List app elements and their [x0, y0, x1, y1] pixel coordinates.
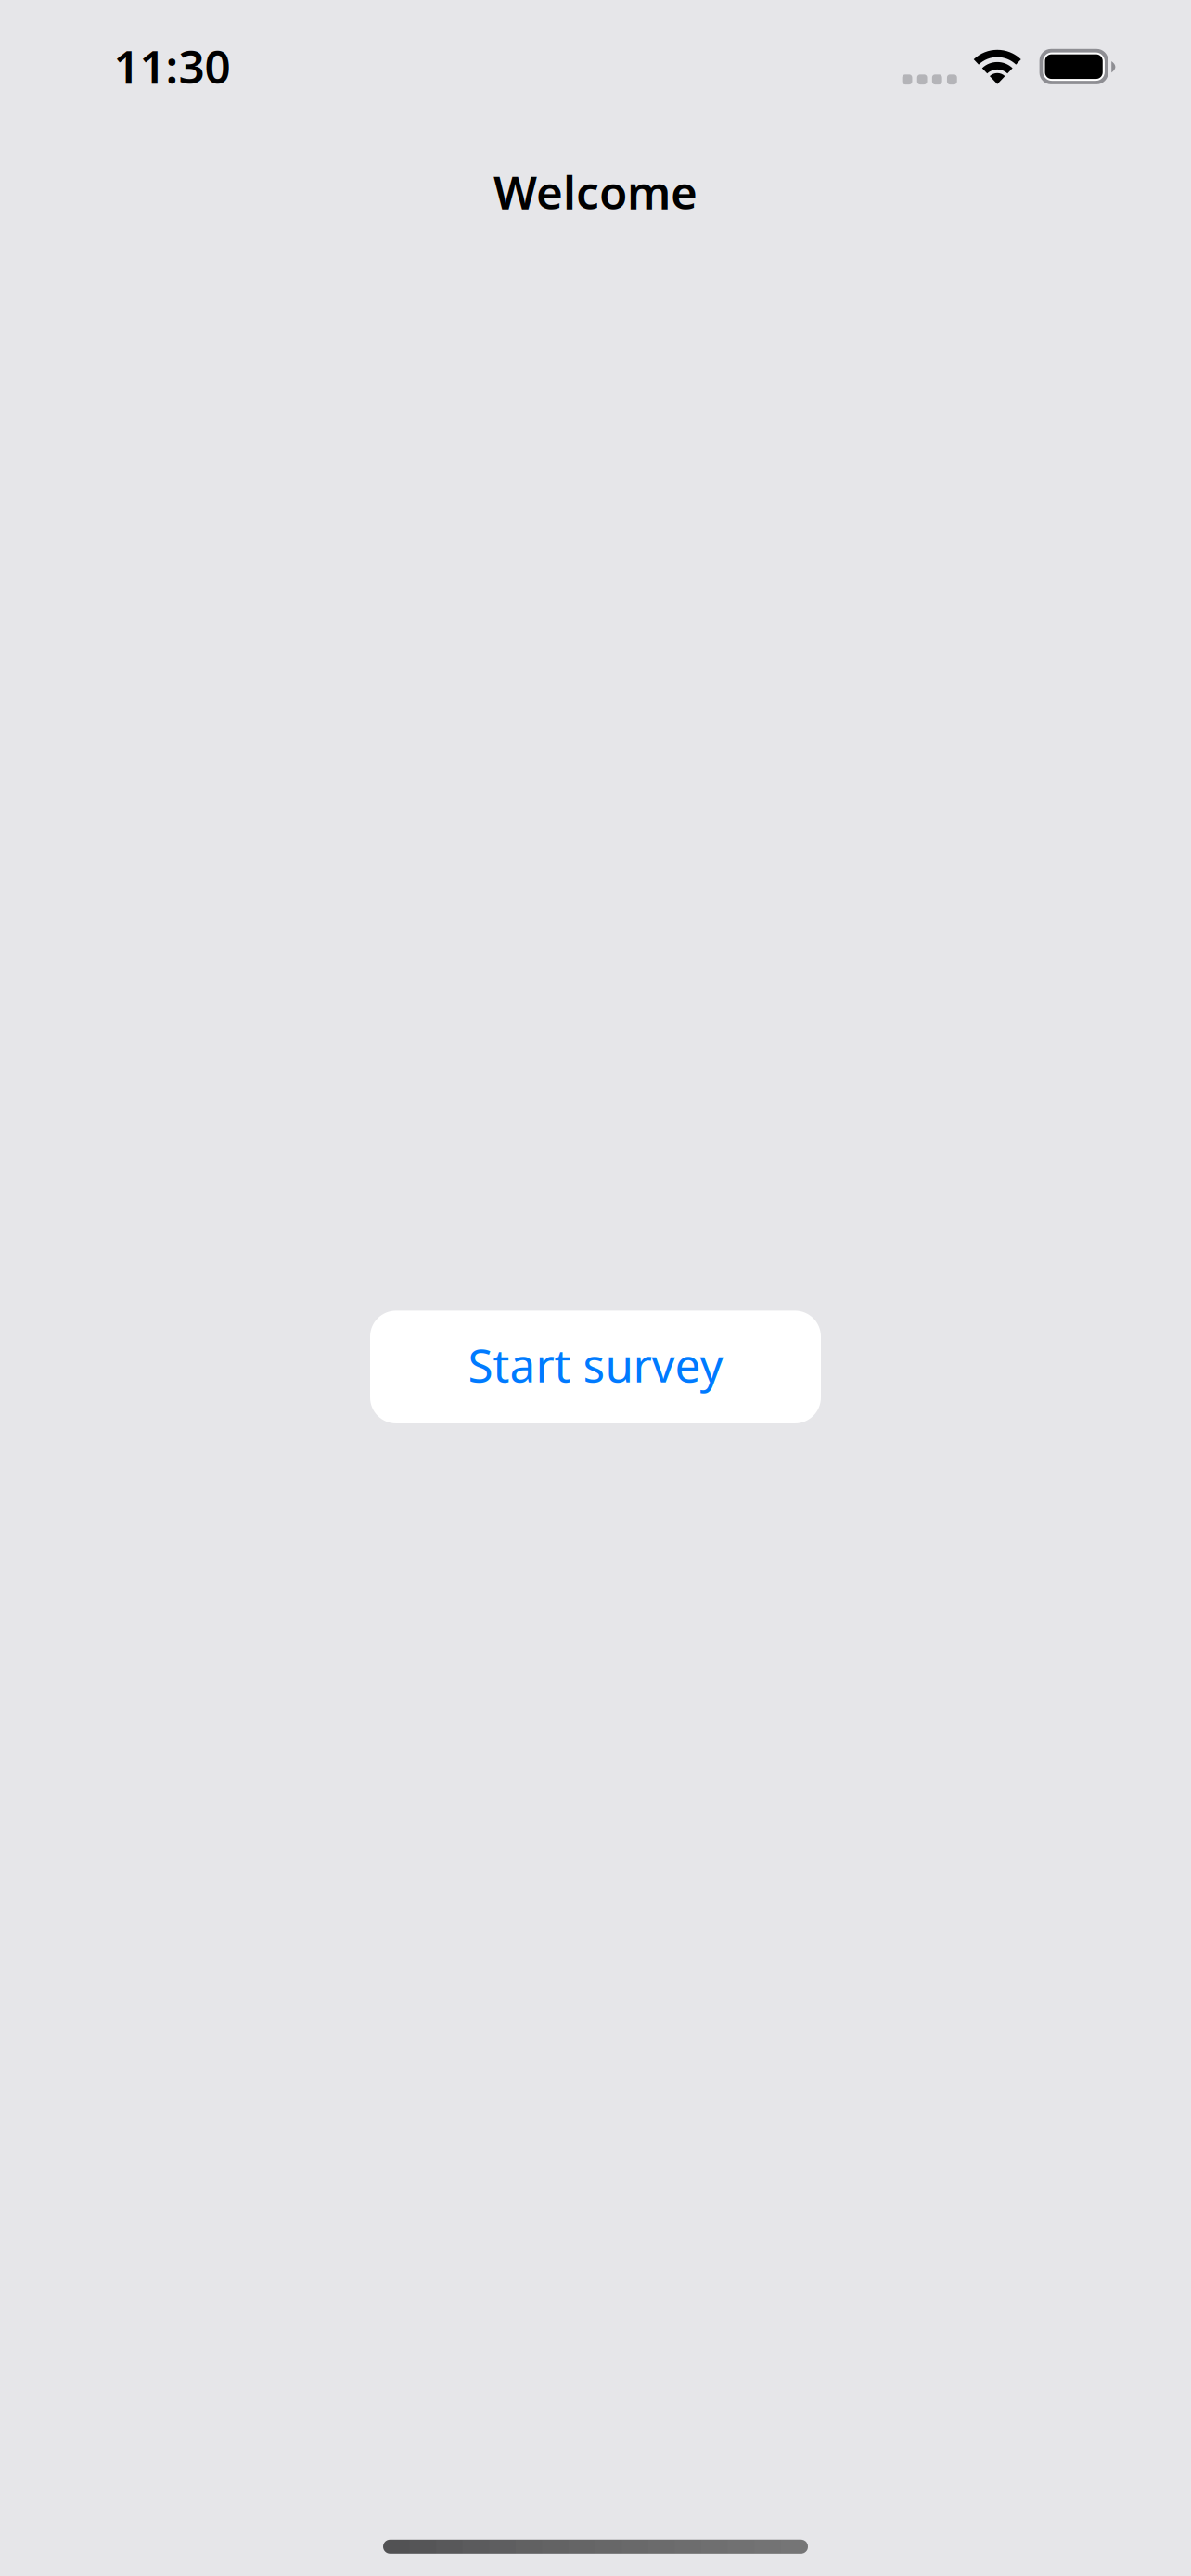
staticText: Welcome [493, 161, 698, 222]
staticText: Start survey [468, 1334, 723, 1395]
button[interactable]: Start survey [370, 1311, 821, 1423]
staticText: 11:30 [114, 36, 231, 96]
